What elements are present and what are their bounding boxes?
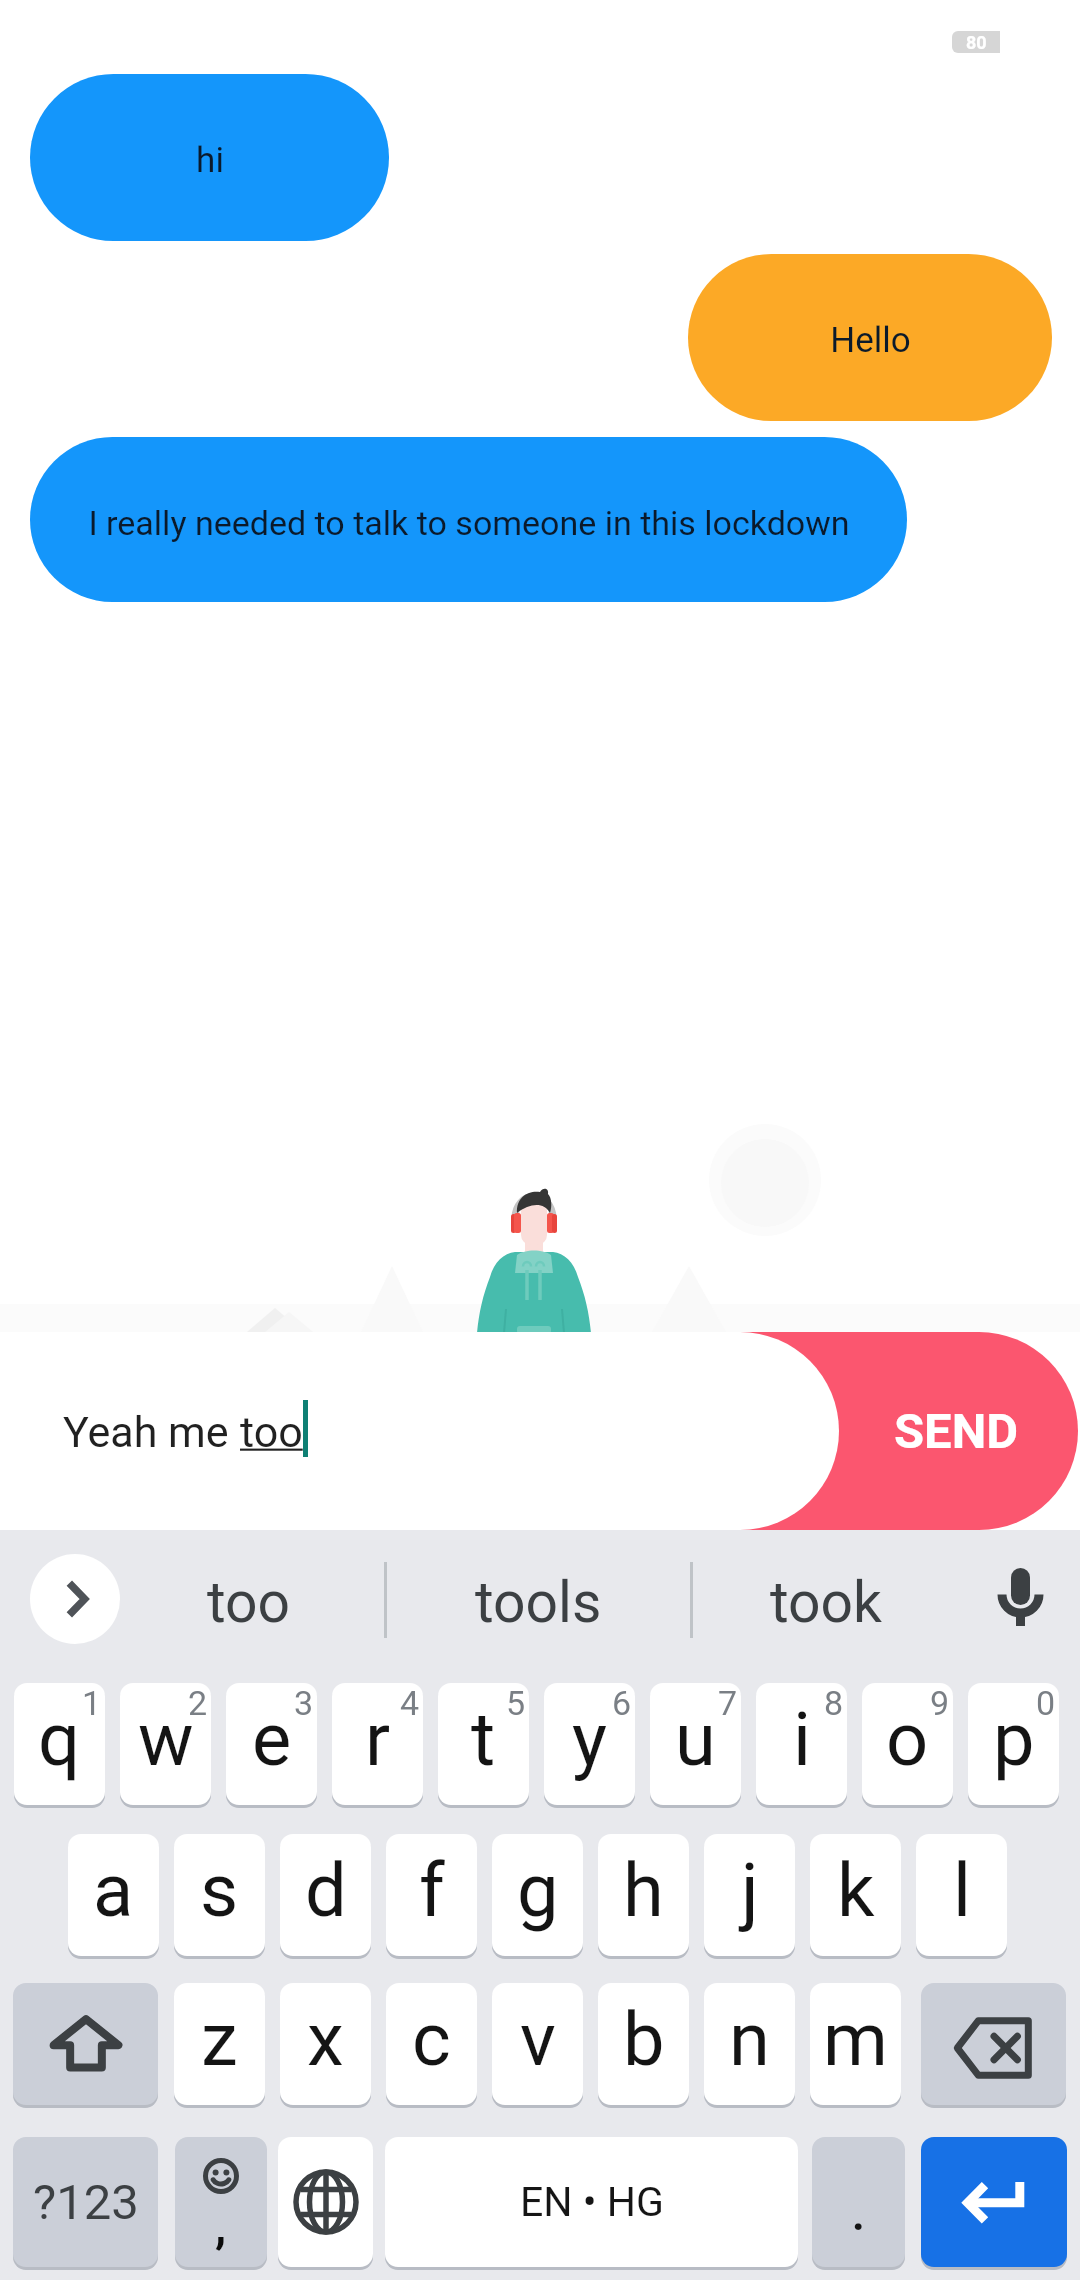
button[interactable]: b	[598, 1983, 689, 2105]
staticText: Yeah me	[63, 1407, 240, 1457]
button[interactable]: y	[544, 1683, 635, 1805]
staticText: 4	[400, 1683, 420, 1723]
staticText: 6	[612, 1683, 632, 1723]
button[interactable]: o	[862, 1683, 953, 1805]
button[interactable]: t	[438, 1683, 529, 1805]
button[interactable]: tools	[428, 1556, 648, 1648]
button[interactable]: x	[280, 1983, 371, 2105]
staticText: m	[823, 1996, 888, 2083]
button[interactable]: z	[174, 1983, 265, 2105]
button[interactable]: q	[14, 1683, 105, 1805]
staticText: EN • HG	[520, 2178, 664, 2226]
staticText: ?123	[33, 2174, 139, 2231]
staticText: 7	[718, 1683, 738, 1723]
button[interactable]: g	[492, 1834, 583, 1956]
button[interactable]: ?123	[13, 2137, 158, 2267]
button[interactable]: u	[650, 1683, 741, 1805]
staticText: 5	[506, 1683, 526, 1723]
staticText: 8	[824, 1683, 844, 1723]
button[interactable]: Voice input	[975, 1552, 1065, 1644]
staticText: q	[38, 1696, 81, 1783]
button[interactable]: Change keyboard	[278, 2137, 373, 2267]
staticText: 9	[930, 1683, 950, 1723]
button[interactable]: EN • HG	[385, 2137, 798, 2267]
staticText: 3	[294, 1683, 314, 1723]
button[interactable]: n	[704, 1983, 795, 2105]
button[interactable]: s	[174, 1834, 265, 1956]
button[interactable]: More suggestions	[30, 1554, 120, 1644]
staticText: s	[200, 1847, 239, 1934]
staticText: tools	[475, 1569, 602, 1636]
button[interactable]: m	[810, 1983, 901, 2105]
staticText: 1	[82, 1683, 102, 1723]
button[interactable]: Hello	[688, 254, 1052, 421]
staticText: Hello	[830, 320, 911, 361]
staticText: SEND	[894, 1403, 1019, 1460]
staticText: a	[93, 1847, 134, 1934]
staticText: ,	[215, 2200, 227, 2254]
staticText: k	[837, 1847, 875, 1934]
staticText: r	[365, 1696, 391, 1783]
button[interactable]: Enter	[921, 2137, 1067, 2267]
staticText: too	[207, 1569, 291, 1636]
button[interactable]: Yeah me	[0, 1332, 839, 1530]
button[interactable]: w	[120, 1683, 211, 1805]
button[interactable]: hi	[30, 74, 389, 241]
staticText: took	[770, 1569, 882, 1636]
button[interactable]: SEND	[640, 1332, 1078, 1530]
staticText: 0	[1036, 1683, 1056, 1723]
staticText: e	[252, 1696, 292, 1783]
button[interactable]: d	[280, 1834, 371, 1956]
button[interactable]: k	[810, 1834, 901, 1956]
staticText: i	[793, 1696, 811, 1783]
staticText: z	[201, 1996, 238, 2083]
staticText: I really needed to talk to someone in th…	[88, 503, 850, 543]
button[interactable]: p	[968, 1683, 1059, 1805]
staticText: d	[305, 1847, 347, 1934]
button[interactable]: v	[492, 1983, 583, 2105]
staticText: g	[517, 1847, 559, 1934]
staticText: .	[852, 2189, 865, 2241]
button[interactable]: Backspace	[921, 1983, 1066, 2105]
button[interactable]: i	[756, 1683, 847, 1805]
button[interactable]: e	[226, 1683, 317, 1805]
button[interactable]: Emoji	[175, 2137, 267, 2267]
staticText: b	[623, 1996, 665, 2083]
button[interactable]: .	[812, 2137, 905, 2267]
staticText: p	[993, 1696, 1035, 1783]
staticText: x	[307, 1996, 344, 2083]
staticText: h	[623, 1847, 664, 1934]
button[interactable]: j	[704, 1834, 795, 1956]
staticText: o	[886, 1696, 929, 1783]
button[interactable]: too	[139, 1556, 359, 1648]
staticText: t	[471, 1696, 496, 1783]
staticText: 80	[966, 32, 987, 53]
button[interactable]: r	[332, 1683, 423, 1805]
staticText: f	[419, 1847, 445, 1934]
staticText: hi	[196, 140, 224, 181]
button[interactable]: c	[386, 1983, 477, 2105]
button[interactable]: l	[916, 1834, 1007, 1956]
staticText: j	[741, 1847, 759, 1934]
button[interactable]: h	[598, 1834, 689, 1956]
button[interactable]: a	[68, 1834, 159, 1956]
staticText: 2	[188, 1683, 208, 1723]
button[interactable]: took	[716, 1556, 936, 1648]
staticText: w	[138, 1696, 194, 1783]
staticText: too	[240, 1407, 303, 1457]
staticText: v	[520, 1996, 556, 2083]
button[interactable]: f	[386, 1834, 477, 1956]
staticText: l	[953, 1847, 971, 1934]
staticText: u	[675, 1696, 716, 1783]
button[interactable]: I really needed to talk to someone in th…	[30, 437, 907, 602]
staticText: c	[412, 1996, 451, 2083]
button[interactable]: Shift	[13, 1983, 158, 2105]
staticText: y	[572, 1696, 608, 1783]
staticText: n	[729, 1996, 770, 2083]
